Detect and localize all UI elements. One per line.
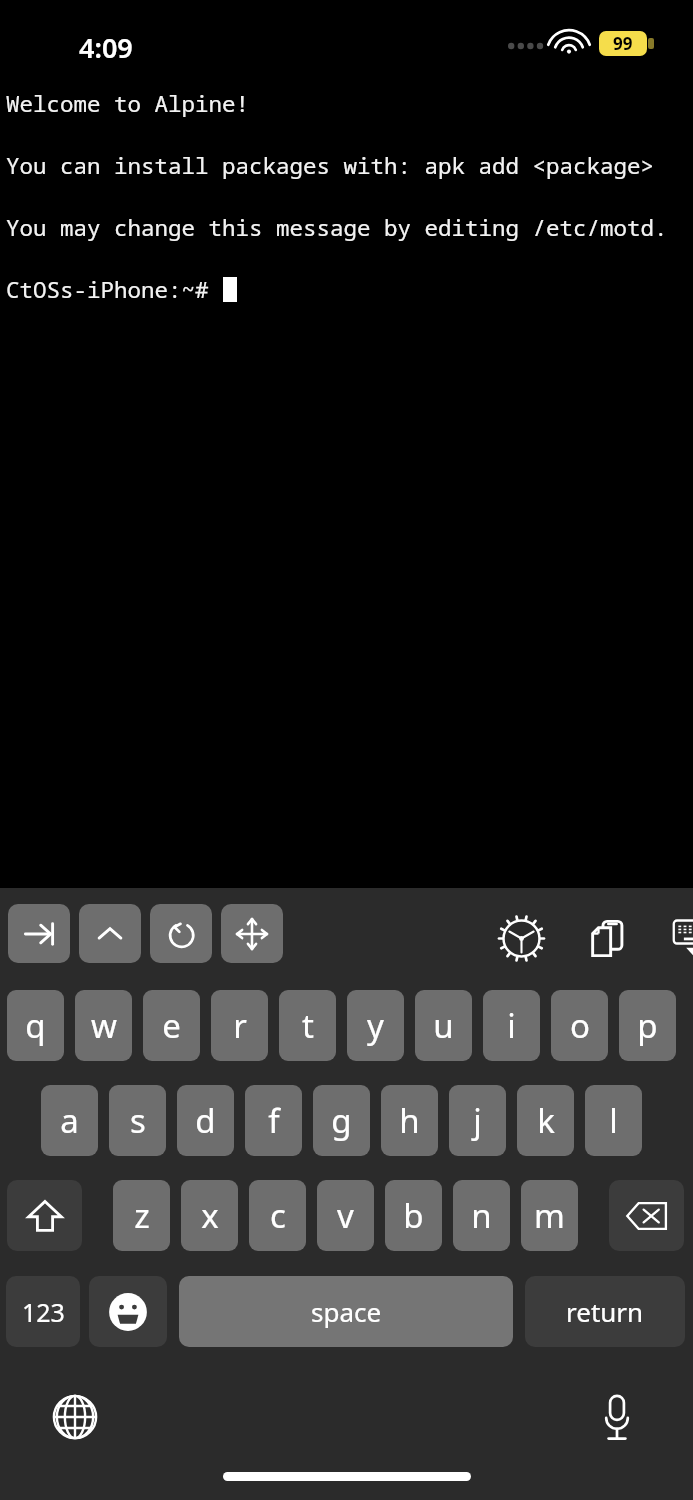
staticText: n xyxy=(471,1193,492,1238)
button[interactable]: Next keyboard xyxy=(46,1388,104,1446)
button[interactable]: k xyxy=(517,1085,574,1156)
staticText: z xyxy=(134,1193,150,1238)
button[interactable]: a xyxy=(41,1085,98,1156)
button[interactable]: z xyxy=(113,1180,170,1251)
staticText: a xyxy=(60,1098,79,1143)
staticText: g xyxy=(331,1098,352,1143)
button[interactable]: r xyxy=(211,990,268,1061)
button[interactable]: Settings xyxy=(495,912,548,965)
button[interactable]: w xyxy=(75,990,132,1061)
staticText: p xyxy=(637,1003,658,1048)
staticText: y xyxy=(367,1003,384,1048)
staticText: x xyxy=(201,1193,219,1238)
staticText: v xyxy=(337,1193,354,1238)
button[interactable]: o xyxy=(551,990,608,1061)
button[interactable]: Emoji xyxy=(89,1276,167,1347)
staticText: r xyxy=(233,1003,247,1048)
staticText: 4:09 xyxy=(79,29,133,66)
staticText: Welcome to Alpine! xyxy=(6,88,250,119)
staticText: u xyxy=(433,1003,454,1048)
button[interactable]: m xyxy=(521,1180,578,1251)
staticText: k xyxy=(537,1098,555,1143)
button[interactable]: d xyxy=(177,1085,234,1156)
button[interactable]: t xyxy=(279,990,336,1061)
staticText: You can install packages with: apk add <… xyxy=(6,150,655,181)
button[interactable]: e xyxy=(143,990,200,1061)
button[interactable]: u xyxy=(415,990,472,1061)
staticText: j xyxy=(473,1098,482,1143)
button[interactable]: p xyxy=(619,990,676,1061)
staticText: f xyxy=(268,1098,280,1143)
button[interactable]: v xyxy=(317,1180,374,1251)
button[interactable]: b xyxy=(385,1180,442,1251)
staticText: CtOSs-iPhone:~# xyxy=(6,274,223,305)
button[interactable]: i xyxy=(483,990,540,1061)
staticText: t xyxy=(302,1003,314,1048)
staticText: b xyxy=(403,1193,424,1238)
button[interactable]: Hide keyboard xyxy=(667,911,693,965)
button[interactable]: j xyxy=(449,1085,506,1156)
staticText: s xyxy=(130,1098,146,1143)
button[interactable]: q xyxy=(7,990,64,1061)
button[interactable]: y xyxy=(347,990,404,1061)
staticText: d xyxy=(195,1098,216,1143)
staticText: 99 xyxy=(613,32,633,55)
staticText: o xyxy=(570,1003,590,1048)
staticText: i xyxy=(507,1003,516,1048)
button[interactable]: Arrow keys xyxy=(221,904,283,963)
button[interactable]: h xyxy=(381,1085,438,1156)
button[interactable]: Tab xyxy=(8,904,70,963)
staticText: q xyxy=(25,1003,46,1048)
button[interactable]: n xyxy=(453,1180,510,1251)
button[interactable]: Backspace xyxy=(609,1180,684,1251)
staticText: h xyxy=(399,1098,420,1143)
button[interactable]: f xyxy=(245,1085,302,1156)
button[interactable]: space xyxy=(179,1276,513,1347)
button[interactable]: Control xyxy=(79,904,141,963)
button[interactable]: 123 xyxy=(6,1276,80,1347)
button[interactable]: Dictation xyxy=(588,1388,646,1446)
staticText: m xyxy=(534,1193,565,1238)
staticText: w xyxy=(91,1003,117,1048)
button[interactable]: g xyxy=(313,1085,370,1156)
button[interactable]: Shift xyxy=(7,1180,82,1251)
staticText: return xyxy=(566,1294,644,1329)
button[interactable]: Escape xyxy=(150,904,212,963)
button[interactable]: Paste xyxy=(581,912,634,965)
staticText: c xyxy=(270,1193,286,1238)
staticText: You may change this message by editing /… xyxy=(6,212,668,243)
button[interactable]: c xyxy=(249,1180,306,1251)
staticText: 123 xyxy=(22,1295,65,1329)
button[interactable]: x xyxy=(181,1180,238,1251)
staticText: e xyxy=(162,1003,181,1048)
staticText: space xyxy=(311,1294,382,1329)
button[interactable]: return xyxy=(525,1276,685,1347)
button[interactable]: l xyxy=(585,1085,642,1156)
button[interactable]: s xyxy=(109,1085,166,1156)
staticText: l xyxy=(609,1098,618,1143)
